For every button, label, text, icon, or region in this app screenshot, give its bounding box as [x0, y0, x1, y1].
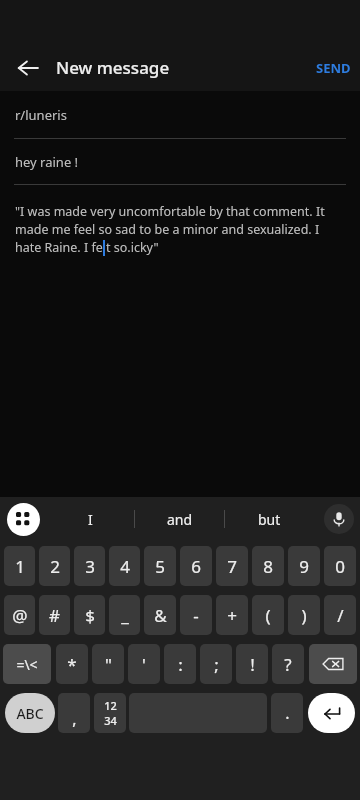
staticText: $ — [85, 604, 95, 627]
button[interactable]: Voice input — [324, 504, 354, 534]
staticText: New message — [56, 56, 170, 79]
button[interactable]: _ — [109, 595, 140, 635]
staticText: 8 — [263, 555, 273, 578]
button[interactable]: 6 — [180, 546, 212, 586]
staticText: ABC — [16, 704, 44, 723]
button[interactable]: ! — [236, 644, 268, 684]
staticText: ; — [214, 653, 219, 676]
staticText: & — [154, 604, 167, 627]
staticText: , — [72, 708, 77, 730]
button[interactable]: Toolbar — [7, 503, 40, 536]
staticText: 1 — [15, 555, 25, 578]
button[interactable]: # — [39, 595, 70, 635]
staticText: hey raine ! — [15, 153, 79, 171]
staticText: r/luneris — [15, 106, 67, 124]
button[interactable]: 3 — [74, 546, 105, 586]
staticText: SEND — [316, 59, 351, 77]
staticText: 6 — [191, 555, 201, 578]
staticText: "I was made very uncomfortable by that c… — [15, 203, 346, 256]
button[interactable]: SEND — [307, 51, 360, 85]
button[interactable]: 9 — [288, 546, 320, 586]
staticText: * — [67, 653, 77, 676]
button[interactable]: - — [180, 595, 212, 635]
button[interactable]: , — [58, 693, 90, 733]
staticText: 5 — [155, 555, 165, 578]
staticText: and — [167, 510, 193, 529]
button[interactable]: I — [46, 497, 134, 541]
staticText: ) — [301, 604, 307, 627]
staticText: =\< — [16, 655, 38, 674]
button[interactable]: ABC — [5, 693, 55, 733]
staticText: @ — [12, 604, 28, 627]
staticText: 2 — [50, 555, 60, 578]
button[interactable]: Enter — [308, 693, 355, 733]
staticText: : — [178, 653, 183, 676]
button[interactable]: 7 — [216, 546, 248, 586]
staticText: 4 — [120, 555, 130, 578]
staticText: I — [88, 510, 93, 529]
staticText: ! — [250, 653, 255, 676]
button[interactable]: and — [135, 497, 224, 541]
button[interactable]: : — [164, 644, 196, 684]
button[interactable]: Numbers — [94, 693, 126, 733]
staticText: " — [105, 653, 112, 676]
button[interactable]: " — [92, 644, 124, 684]
button[interactable]: ' — [128, 644, 160, 684]
button[interactable]: / — [324, 595, 356, 635]
button[interactable]: @ — [4, 595, 35, 635]
staticText: . — [285, 702, 290, 724]
button[interactable]: 8 — [252, 546, 284, 586]
button[interactable]: ) — [288, 595, 320, 635]
button[interactable]: + — [216, 595, 248, 635]
button[interactable]: Backspace — [309, 644, 357, 684]
button[interactable]: but — [225, 497, 314, 541]
staticText: 34 — [104, 713, 117, 728]
staticText: _ — [121, 604, 129, 627]
staticText: 0 — [335, 555, 345, 578]
button[interactable]: hey raine ! — [0, 139, 360, 184]
staticText: but — [258, 510, 281, 529]
staticText: 12 — [104, 698, 117, 713]
button[interactable]: . — [271, 693, 303, 733]
button[interactable]: 2 — [39, 546, 70, 586]
button[interactable]: =\< — [3, 644, 51, 684]
staticText: ( — [265, 604, 271, 627]
button[interactable]: 1 — [4, 546, 35, 586]
staticText: # — [49, 604, 60, 627]
button[interactable]: ( — [252, 595, 284, 635]
staticText: + — [227, 604, 237, 627]
button[interactable]: & — [144, 595, 176, 635]
button[interactable]: ? — [272, 644, 304, 684]
button[interactable]: 0 — [324, 546, 356, 586]
button[interactable]: 5 — [144, 546, 176, 586]
button[interactable]: Back — [8, 48, 48, 88]
staticText: ' — [142, 653, 146, 676]
button[interactable]: ; — [200, 644, 232, 684]
staticText: / — [337, 604, 344, 627]
staticText: 7 — [227, 555, 237, 578]
staticText: - — [193, 604, 199, 627]
staticText: 3 — [85, 555, 95, 578]
button[interactable]: * — [56, 644, 88, 684]
button[interactable]: r/luneris — [0, 91, 360, 138]
button[interactable]: "I was made very uncomfortable by that c… — [0, 185, 360, 256]
staticText: 9 — [299, 555, 309, 578]
button[interactable]: $ — [74, 595, 105, 635]
staticText: ? — [284, 653, 292, 676]
button[interactable]: 4 — [109, 546, 140, 586]
